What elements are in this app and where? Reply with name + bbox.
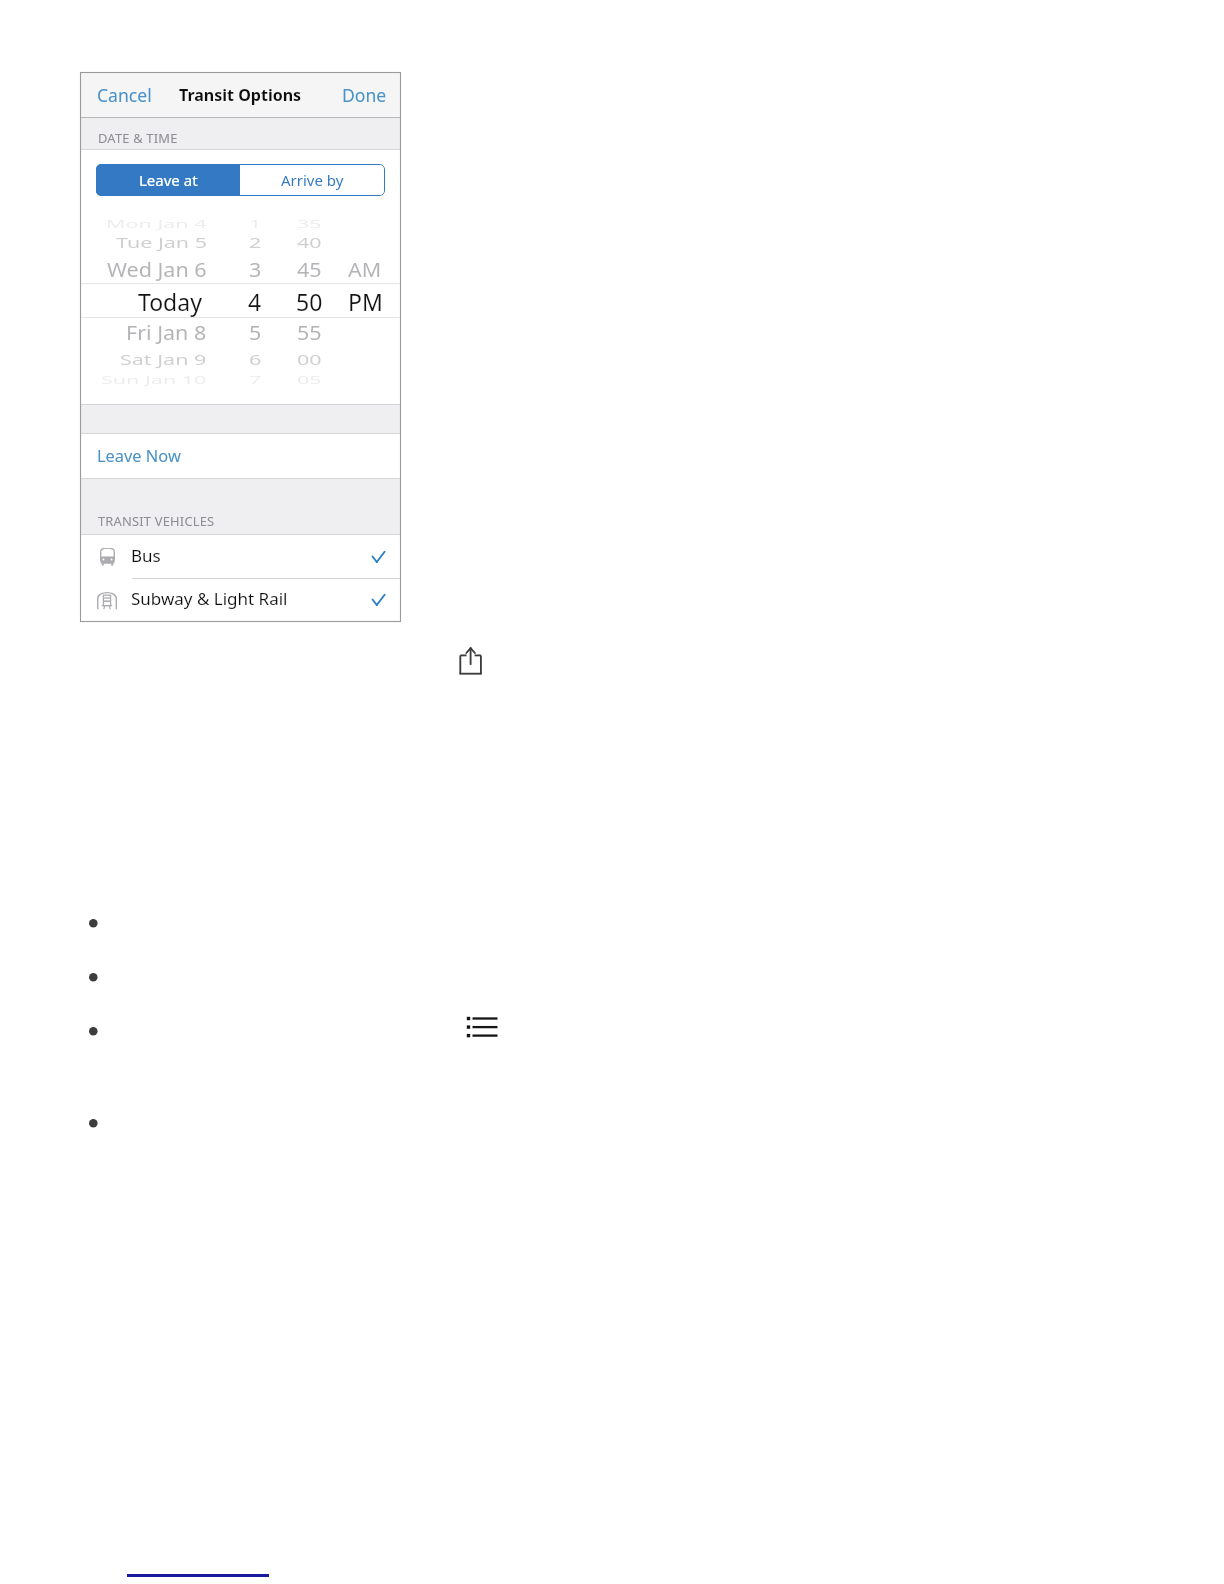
staticText: Done — [342, 83, 387, 107]
staticText: 3 — [249, 256, 262, 283]
staticText: 00 — [297, 349, 322, 369]
button[interactable]: Cancel — [93, 72, 156, 118]
staticText: Mon Jan 4 — [106, 216, 207, 230]
staticText: Sun Jan 10 — [101, 372, 207, 386]
staticText: 4 — [248, 286, 262, 317]
staticText: Leave at — [139, 170, 198, 190]
staticText: 35 — [297, 216, 322, 230]
staticText: DATE & TIME — [98, 129, 178, 147]
staticText: 1 — [249, 216, 262, 230]
staticText: Today — [138, 286, 202, 317]
button[interactable]: Leave Now — [80, 434, 401, 479]
staticText: Arrive by — [281, 170, 344, 190]
staticText: Cancel — [97, 83, 152, 107]
staticText: Wed Jan 6 — [107, 256, 207, 283]
staticText: PM — [348, 286, 383, 317]
staticText: Subway & Light Rail — [131, 587, 288, 610]
staticText: 5 — [249, 319, 262, 346]
button[interactable]: Share — [457, 644, 487, 678]
button[interactable]: Bus — [80, 535, 401, 579]
button[interactable]: Subway & Light Rail — [80, 579, 401, 621]
button[interactable]: Arrive by — [240, 164, 385, 196]
staticText: 6 — [249, 349, 262, 369]
staticText: Fri Jan 8 — [126, 319, 207, 346]
staticText: 7 — [249, 372, 262, 386]
staticText: 2 — [249, 232, 262, 252]
staticText: 40 — [297, 232, 322, 252]
staticText: 45 — [297, 256, 322, 283]
staticText: AM — [348, 256, 382, 283]
staticText: 50 — [296, 286, 323, 317]
staticText: Leave Now — [97, 444, 181, 466]
staticText: Bus — [131, 544, 161, 567]
staticText: Tue Jan 5 — [116, 232, 207, 252]
staticText: TRANSIT VEHICLES — [98, 512, 215, 530]
staticText: 55 — [297, 319, 322, 346]
staticText: 05 — [297, 372, 322, 386]
button[interactable]: Leave at — [96, 164, 240, 196]
staticText: Sat Jan 9 — [120, 349, 207, 369]
button[interactable]: List view — [466, 1014, 498, 1038]
staticText: Transit Options — [179, 84, 302, 106]
button[interactable]: Done — [333, 72, 396, 118]
